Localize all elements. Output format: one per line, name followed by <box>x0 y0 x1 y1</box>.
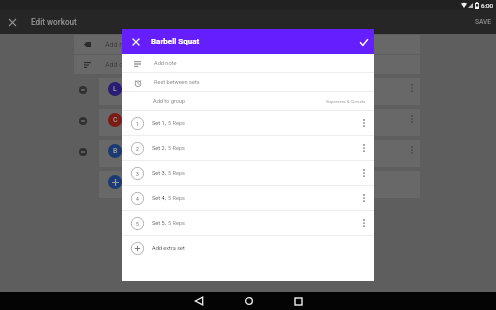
staticText: 5 Reps <box>168 145 185 152</box>
button[interactable]: Recents <box>275 292 322 310</box>
button[interactable]: Back <box>175 292 222 310</box>
button[interactable]: Add extra set <box>122 236 374 260</box>
staticText: Set 2, <box>152 145 168 152</box>
staticText: Rest between sets <box>154 79 200 86</box>
staticText: 5 Reps <box>168 120 185 127</box>
staticText: Supersets & Circuits <box>326 99 366 104</box>
button[interactable]: Add name <box>74 35 420 54</box>
button[interactable]: Close <box>4 14 21 31</box>
button[interactable]: Rest between sets <box>122 73 374 91</box>
button[interactable]: Set options <box>355 139 373 157</box>
staticText: B <box>113 147 118 155</box>
staticText: Set 1, <box>152 120 168 127</box>
button[interactable]: Add note <box>122 54 374 72</box>
button[interactable]: More options <box>404 142 420 158</box>
staticText: Set 4, <box>152 195 168 202</box>
staticText: 5 <box>136 221 139 227</box>
button[interactable]: Set options <box>355 189 373 207</box>
button[interactable]: Set options <box>355 114 373 132</box>
staticText: C <box>113 116 118 124</box>
staticText: Add name <box>105 41 137 49</box>
staticText: 1 <box>136 121 139 127</box>
staticText: 2 <box>136 146 139 152</box>
button[interactable]: 3 <box>122 161 374 185</box>
staticText: Add to group <box>153 98 186 105</box>
staticText: Add description <box>105 61 154 69</box>
button[interactable]: Remove exercise <box>74 112 92 130</box>
button[interactable]: More options <box>404 111 420 127</box>
staticText: Set 3, <box>152 170 168 177</box>
button[interactable]: More options <box>404 80 420 96</box>
button[interactable] <box>99 171 420 198</box>
button[interactable]: 2 <box>122 136 374 160</box>
staticText: SAVE <box>475 18 492 26</box>
button[interactable]: Remove exercise <box>74 143 92 161</box>
staticText: 4 <box>136 196 139 202</box>
staticText: 5 Reps <box>168 195 185 202</box>
button[interactable]: Home <box>225 292 272 310</box>
staticText: 3 <box>136 171 139 177</box>
button[interactable]: SAVE <box>469 14 496 30</box>
button[interactable]: C <box>99 109 420 136</box>
button[interactable]: Confirm <box>354 32 374 52</box>
staticText: Add extra set <box>152 245 185 252</box>
staticText: L <box>113 85 117 93</box>
button[interactable]: B <box>99 140 420 167</box>
staticText: Set 5, <box>152 220 168 227</box>
staticText: 5 Reps <box>168 220 185 227</box>
button[interactable]: 4 <box>122 186 374 210</box>
button[interactable]: 5 <box>122 211 374 235</box>
staticText: Add note <box>154 60 177 67</box>
button[interactable]: Add description <box>74 55 420 74</box>
button[interactable]: Close <box>126 32 145 51</box>
button[interactable]: Set options <box>355 214 373 232</box>
staticText: 6:00 <box>481 2 493 9</box>
button[interactable]: Set options <box>355 164 373 182</box>
staticText: Edit workout <box>31 17 77 27</box>
button[interactable]: L <box>99 78 420 105</box>
button[interactable]: Add to group <box>122 92 374 110</box>
button[interactable]: Remove exercise <box>74 81 92 99</box>
staticText: Barbell Squat <box>151 37 200 46</box>
button[interactable]: 1 <box>122 111 374 135</box>
staticText: 5 Reps <box>168 170 185 177</box>
